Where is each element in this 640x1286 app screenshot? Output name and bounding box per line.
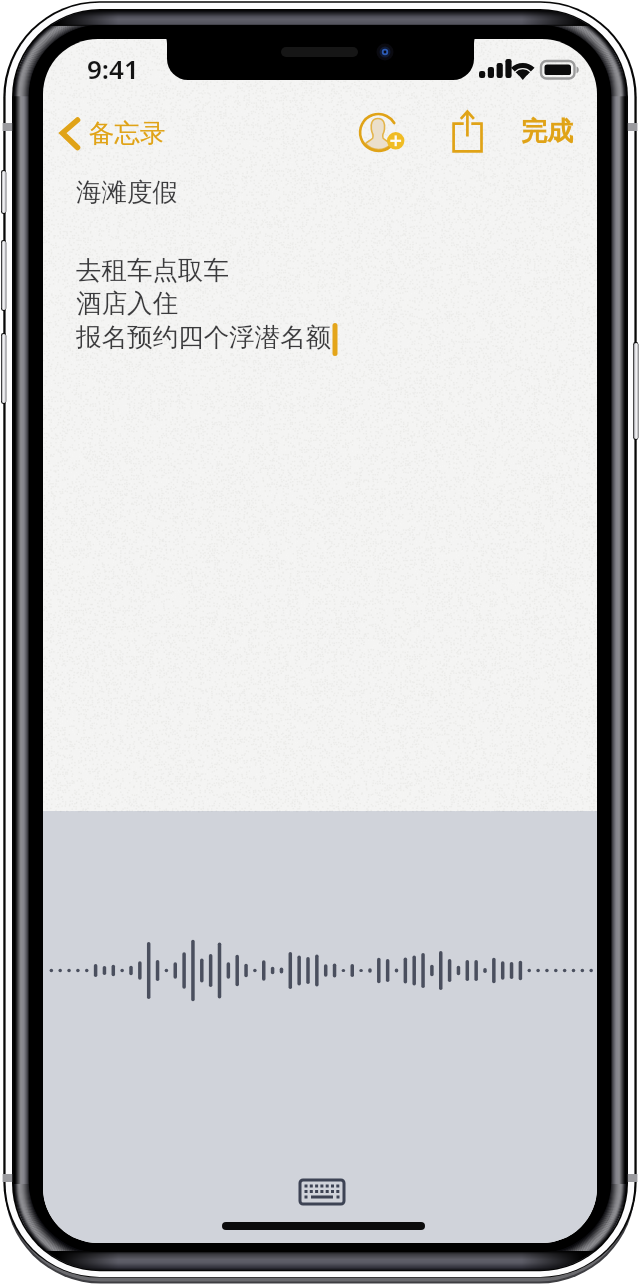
staticText: 9:41 xyxy=(87,51,139,86)
staticText: 备忘录 xyxy=(89,117,166,149)
button[interactable]: Add people xyxy=(354,108,406,160)
button[interactable]: 备忘录 xyxy=(54,110,161,154)
staticText: 海滩度假 xyxy=(76,176,178,208)
staticText: 去租车点取车 酒店入住 报名预约四个浮潜名额 xyxy=(76,254,331,354)
button[interactable]: 完成 xyxy=(521,115,573,148)
staticText: 完成 xyxy=(521,115,573,148)
button[interactable]: Share xyxy=(446,104,490,158)
